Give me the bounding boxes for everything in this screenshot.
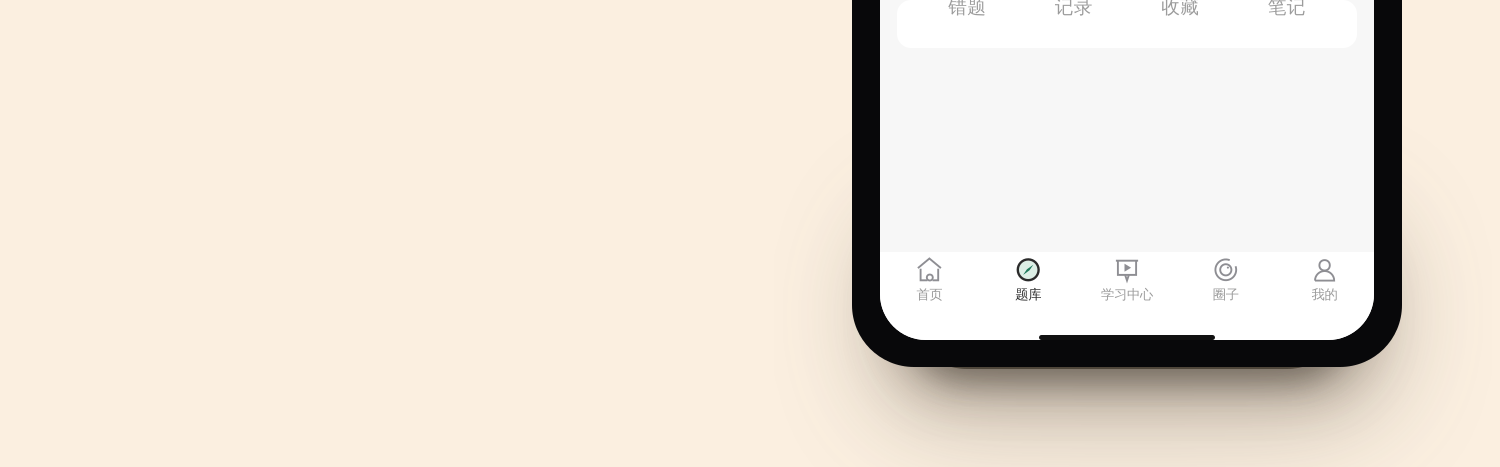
button[interactable]: 记录 (1020, 0, 1127, 48)
staticText: 笔记 (1268, 0, 1306, 18)
button[interactable]: 圈子 (1176, 252, 1275, 306)
staticText: 学习中心 (1101, 286, 1153, 303)
button[interactable]: 题库 (979, 252, 1078, 306)
staticText: 题库 (1015, 286, 1041, 303)
button[interactable]: 收藏 (1127, 0, 1233, 48)
staticText: 收藏 (1161, 0, 1199, 18)
staticText: 圈子 (1213, 286, 1239, 303)
staticText: 我的 (1312, 286, 1338, 303)
staticText: 记录 (1055, 0, 1093, 18)
staticText: 错题 (948, 0, 986, 18)
button[interactable]: 错题 (914, 0, 1020, 48)
staticText: 首页 (916, 286, 942, 303)
button[interactable]: 首页 (880, 252, 979, 306)
button[interactable]: 学习中心 (1078, 252, 1176, 306)
button[interactable]: 我的 (1275, 252, 1374, 306)
button[interactable]: 笔记 (1233, 0, 1340, 48)
